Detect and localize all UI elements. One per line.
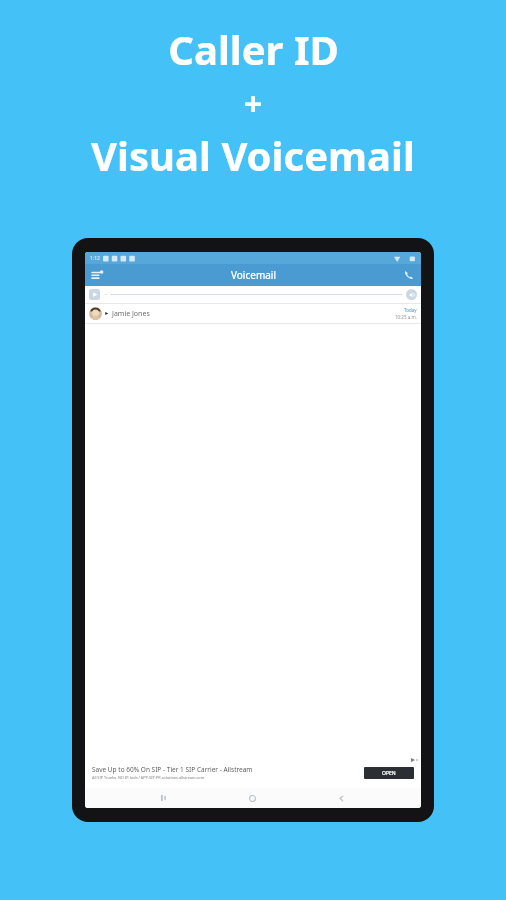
button[interactable]: Jamie Jones [85, 304, 421, 323]
staticText: Visual Voicemail [91, 128, 415, 182]
staticText: Caller ID [168, 22, 339, 76]
button[interactable]: x [85, 756, 421, 788]
button[interactable]: Back [332, 789, 350, 807]
staticText: + [244, 82, 263, 126]
button[interactable]: Play [89, 289, 100, 300]
button[interactable]: Recents [155, 789, 173, 807]
staticText: All SIP Trunks. NO IP. bids / APP-SIP-PR… [92, 775, 205, 780]
button[interactable]: Dial [400, 266, 418, 284]
button[interactable]: Speaker [406, 289, 417, 300]
button[interactable]: Menu [88, 266, 106, 284]
staticText: Today [404, 307, 417, 313]
staticText: x [416, 757, 419, 762]
staticText: 10:25 a.m. [395, 314, 417, 320]
staticText: - [105, 291, 107, 298]
button[interactable]: Home [243, 789, 261, 807]
button[interactable]: OPEN [364, 767, 414, 779]
staticText: Voicemail [231, 268, 276, 282]
staticText: Jamie Jones [112, 309, 150, 319]
staticText: Save Up to 60% On SIP - Tier 1 SIP Carri… [92, 765, 253, 774]
staticText: 1:12 [90, 255, 100, 262]
staticText: OPEN [382, 770, 396, 777]
